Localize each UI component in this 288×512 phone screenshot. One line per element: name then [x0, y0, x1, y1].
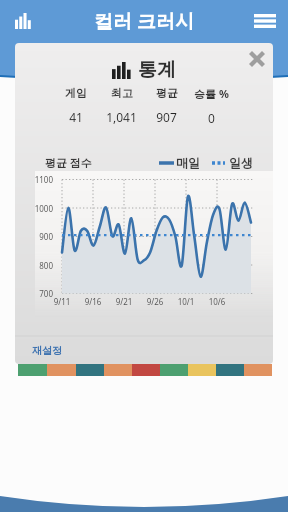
- button[interactable]: Statistics: [6, 4, 40, 38]
- button[interactable]: Menu: [248, 4, 282, 38]
- staticText: 900: [25, 231, 53, 242]
- staticText: 0: [208, 110, 215, 126]
- staticText: 9/26: [142, 296, 168, 307]
- staticText: 1000: [25, 203, 53, 214]
- staticText: 10/1: [173, 296, 199, 307]
- staticText: 10/6: [204, 296, 230, 307]
- staticText: 1100: [25, 174, 53, 185]
- staticText: 9/16: [80, 296, 106, 307]
- staticText: 907: [156, 109, 177, 125]
- staticText: 게임: [65, 86, 87, 100]
- staticText: 평균 점수: [45, 155, 92, 170]
- staticText: 800: [25, 260, 53, 271]
- staticText: 41: [69, 109, 83, 125]
- staticText: 700: [25, 288, 53, 299]
- staticText: 최고: [111, 86, 133, 100]
- staticText: 통계: [138, 58, 176, 82]
- staticText: 9/11: [49, 296, 75, 307]
- staticText: 일생: [229, 155, 253, 170]
- staticText: 재설정: [32, 344, 62, 357]
- staticText: 평균: [156, 86, 178, 100]
- button[interactable]: 재설정: [27, 340, 67, 361]
- staticText: 9/21: [111, 296, 137, 307]
- staticText: 컬러 크러시: [94, 8, 194, 34]
- staticText: 승률 %: [194, 86, 229, 101]
- staticText: 1,041: [106, 109, 137, 125]
- staticText: 매일: [176, 155, 200, 170]
- button[interactable]: Close: [241, 43, 273, 75]
